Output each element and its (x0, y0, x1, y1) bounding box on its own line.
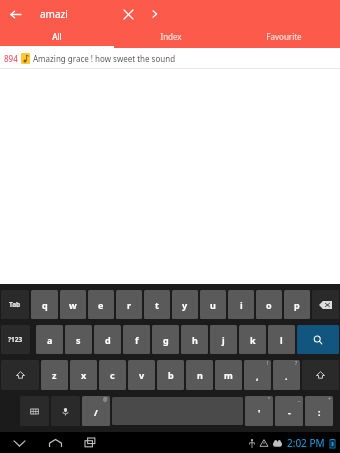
button[interactable]: Index (114, 28, 227, 48)
staticText: p (294, 299, 300, 311)
button[interactable]: e (88, 290, 114, 319)
button[interactable]: Keyboard layout (20, 396, 49, 426)
staticText: ! (267, 360, 269, 367)
staticText: ? (295, 360, 298, 367)
staticText: x (81, 369, 87, 381)
button[interactable]: ? (273, 360, 300, 390)
staticText: Index (160, 31, 182, 42)
button[interactable]: c (99, 360, 126, 390)
staticText: b (168, 369, 174, 381)
staticText: e (98, 299, 104, 311)
button[interactable]: Back (0, 0, 30, 28)
button[interactable]: Shift (302, 360, 339, 390)
button[interactable]: h (181, 325, 208, 354)
staticText: ' (258, 406, 261, 418)
button[interactable]: Go (142, 0, 168, 28)
button[interactable]: + (305, 396, 333, 426)
staticText: : (318, 406, 321, 418)
staticText: Favourite (266, 31, 302, 42)
staticText: + (328, 396, 331, 403)
button[interactable]: b (157, 360, 184, 390)
staticText: . (285, 370, 288, 382)
staticText: amazi (40, 7, 68, 21)
button[interactable]: k (239, 325, 266, 354)
staticText: o (266, 299, 272, 311)
button[interactable]: q (31, 290, 58, 319)
staticText: d (105, 334, 111, 346)
button[interactable]: Voice input (51, 396, 80, 426)
staticText: ?123 (8, 335, 23, 344)
staticText: t (155, 299, 159, 311)
staticText: i (240, 299, 243, 311)
button[interactable]: w (60, 290, 86, 319)
staticText: w (69, 299, 77, 311)
button[interactable]: n (186, 360, 213, 390)
button[interactable]: Tab (1, 290, 29, 319)
staticText: All (52, 31, 62, 42)
button[interactable]: s (65, 325, 92, 354)
staticText: h (192, 334, 198, 346)
staticText: / (94, 406, 98, 418)
button[interactable]: _ (275, 396, 303, 426)
staticText: 2:02 PM (287, 436, 325, 450)
staticText: k (250, 334, 256, 346)
button[interactable]: x (70, 360, 97, 390)
staticText: y (182, 299, 188, 311)
button[interactable]: i (228, 290, 254, 319)
staticText: Tab (9, 300, 21, 309)
staticText: u (210, 299, 216, 311)
button[interactable]: u (200, 290, 226, 319)
button[interactable]: Search (297, 325, 339, 354)
button[interactable]: f (123, 325, 150, 354)
staticText: m (224, 369, 233, 381)
button[interactable]: Favourite (227, 28, 340, 48)
staticText: , (256, 370, 259, 382)
button[interactable]: Clear (114, 0, 142, 28)
button[interactable]: o (256, 290, 282, 319)
button[interactable]: Back (8, 432, 30, 453)
button[interactable]: Shift (1, 360, 39, 390)
staticText: s (76, 334, 81, 346)
button[interactable]: y (172, 290, 198, 319)
button[interactable]: a (36, 325, 63, 354)
button[interactable]: d (94, 325, 121, 354)
button[interactable]: l (268, 325, 295, 354)
staticText: q (42, 299, 48, 311)
staticText: j (222, 334, 225, 346)
staticText: r (127, 299, 132, 311)
button[interactable]: ° (245, 396, 273, 426)
staticText: _ (298, 396, 301, 403)
button[interactable]: Home (44, 432, 66, 453)
staticText: g (163, 334, 169, 346)
staticText: ° (268, 396, 271, 403)
button[interactable]: j (210, 325, 237, 354)
button[interactable]: t (144, 290, 170, 319)
button[interactable]: r (116, 290, 142, 319)
button[interactable]: m (215, 360, 242, 390)
button[interactable]: ! (244, 360, 271, 390)
staticText: f (135, 334, 139, 346)
button[interactable]: z (41, 360, 68, 390)
staticText: a (47, 334, 53, 346)
button[interactable]: v (128, 360, 155, 390)
button[interactable]: 894 (0, 48, 340, 68)
staticText: c (110, 369, 115, 381)
button[interactable]: Backspace (312, 290, 339, 319)
staticText: z (52, 369, 57, 381)
button[interactable]: ?123 (1, 325, 30, 354)
button[interactable]: All (0, 28, 114, 48)
button[interactable]: p (284, 290, 310, 319)
button[interactable]: Recent apps (80, 432, 102, 453)
staticText: n (197, 369, 203, 381)
button[interactable]: g (152, 325, 179, 354)
staticText: v (139, 369, 145, 381)
staticText: @ (103, 396, 108, 403)
staticText: l (280, 334, 283, 346)
staticText: 894 (4, 53, 18, 64)
staticText: - (288, 406, 291, 418)
button[interactable]: @ (82, 396, 110, 426)
staticText: Amazing grace ! how sweet the sound (33, 53, 176, 64)
